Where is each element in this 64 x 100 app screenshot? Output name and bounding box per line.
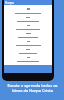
- staticText: Harpa: [5, 1, 14, 5]
- button[interactable]: Harpa: [4, 0, 52, 5]
- staticText: Escute e aprenda todos os hinos da Harpa…: [7, 83, 58, 93]
